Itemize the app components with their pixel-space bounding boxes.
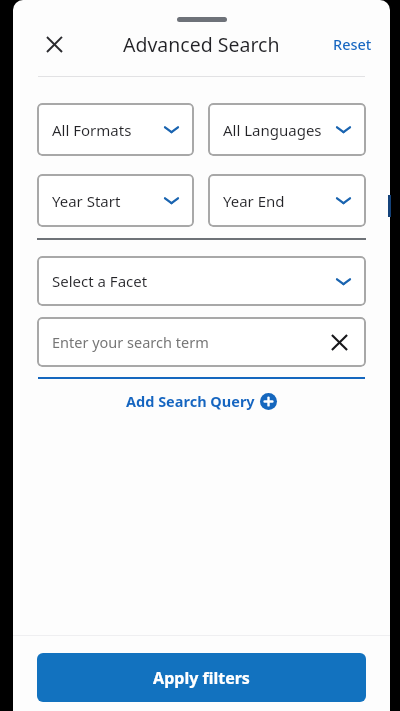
staticText: Reset (333, 34, 372, 54)
button[interactable]: Apply filters (37, 653, 366, 702)
button[interactable]: Close (37, 27, 71, 61)
button[interactable]: Add Search Query (118, 387, 285, 415)
staticText: Select a Facet (52, 271, 148, 291)
staticText: Year End (223, 191, 285, 211)
button[interactable]: Year Start (37, 174, 194, 227)
button[interactable]: Clear search term (326, 329, 352, 355)
staticText: Enter your search term (52, 332, 209, 352)
staticText: Year Start (52, 191, 121, 211)
staticText: Apply filters (153, 667, 250, 689)
staticText: Add Search Query (126, 391, 255, 411)
button[interactable]: All Formats (37, 103, 194, 156)
button[interactable]: Year End (208, 174, 366, 227)
staticText: All Formats (52, 120, 132, 140)
button[interactable]: Reset (329, 28, 376, 60)
button[interactable]: All Languages (208, 103, 366, 156)
staticText: All Languages (223, 120, 322, 140)
staticText: Advanced Search (123, 31, 280, 58)
button[interactable]: Select a Facet (37, 256, 366, 306)
button[interactable]: Enter your search term (37, 317, 366, 367)
